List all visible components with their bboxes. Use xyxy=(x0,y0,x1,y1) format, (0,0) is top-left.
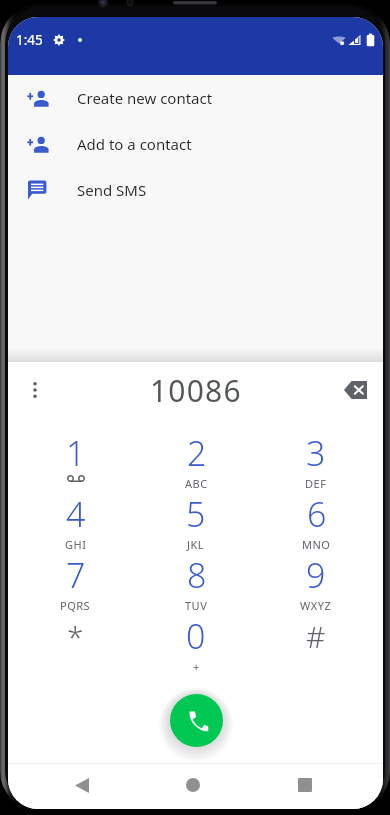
staticText: 10086 xyxy=(150,370,242,411)
button[interactable]: Backspace xyxy=(338,373,372,407)
button[interactable]: 8 xyxy=(136,552,256,613)
button[interactable]: 5 xyxy=(136,491,256,552)
button[interactable]: Create new contact xyxy=(8,75,383,121)
staticText: 9 xyxy=(306,552,326,598)
staticText: 5 xyxy=(186,491,206,537)
button[interactable]: 2 xyxy=(136,430,256,491)
button[interactable]: Back xyxy=(62,765,102,805)
staticText: 8 xyxy=(187,552,207,598)
button[interactable]: 6 xyxy=(256,491,376,552)
button[interactable]: Add to a contact xyxy=(8,121,383,167)
staticText: 6 xyxy=(307,491,327,537)
staticText: 0 xyxy=(186,613,206,659)
button[interactable]: # xyxy=(256,613,376,674)
button[interactable]: Send SMS xyxy=(8,167,383,213)
button[interactable]: 9 xyxy=(256,552,376,613)
staticText: + xyxy=(193,659,200,674)
staticText: 1:45 xyxy=(16,31,43,49)
button[interactable]: 1 xyxy=(15,430,136,491)
staticText: Send SMS xyxy=(77,180,147,200)
staticText: DEF xyxy=(305,476,327,491)
staticText: TUV xyxy=(185,598,208,613)
staticText: 2 xyxy=(187,430,207,476)
staticText: # xyxy=(306,616,326,657)
button[interactable]: Call xyxy=(170,694,223,747)
staticText: MNO xyxy=(302,537,331,552)
staticText: * xyxy=(67,616,84,657)
button[interactable]: * xyxy=(15,613,136,674)
staticText: WXYZ xyxy=(300,598,332,613)
staticText: 3 xyxy=(306,430,326,476)
staticText: 1 xyxy=(66,430,86,476)
button[interactable]: 7 xyxy=(15,552,136,613)
button[interactable]: Recents xyxy=(285,765,325,805)
button[interactable]: 0 xyxy=(136,613,256,674)
button[interactable]: 4 xyxy=(15,491,136,552)
staticText: 7 xyxy=(66,552,86,598)
staticText: PQRS xyxy=(60,598,91,613)
button[interactable]: More options xyxy=(18,373,52,407)
staticText: Add to a contact xyxy=(77,134,192,154)
button[interactable]: Home xyxy=(173,765,213,805)
staticText: GHI xyxy=(65,537,87,552)
staticText: Create new contact xyxy=(77,88,213,108)
staticText: 4 xyxy=(66,491,86,537)
button[interactable]: 3 xyxy=(256,430,376,491)
staticText: JKL xyxy=(187,537,205,552)
staticText: ABC xyxy=(185,476,208,491)
